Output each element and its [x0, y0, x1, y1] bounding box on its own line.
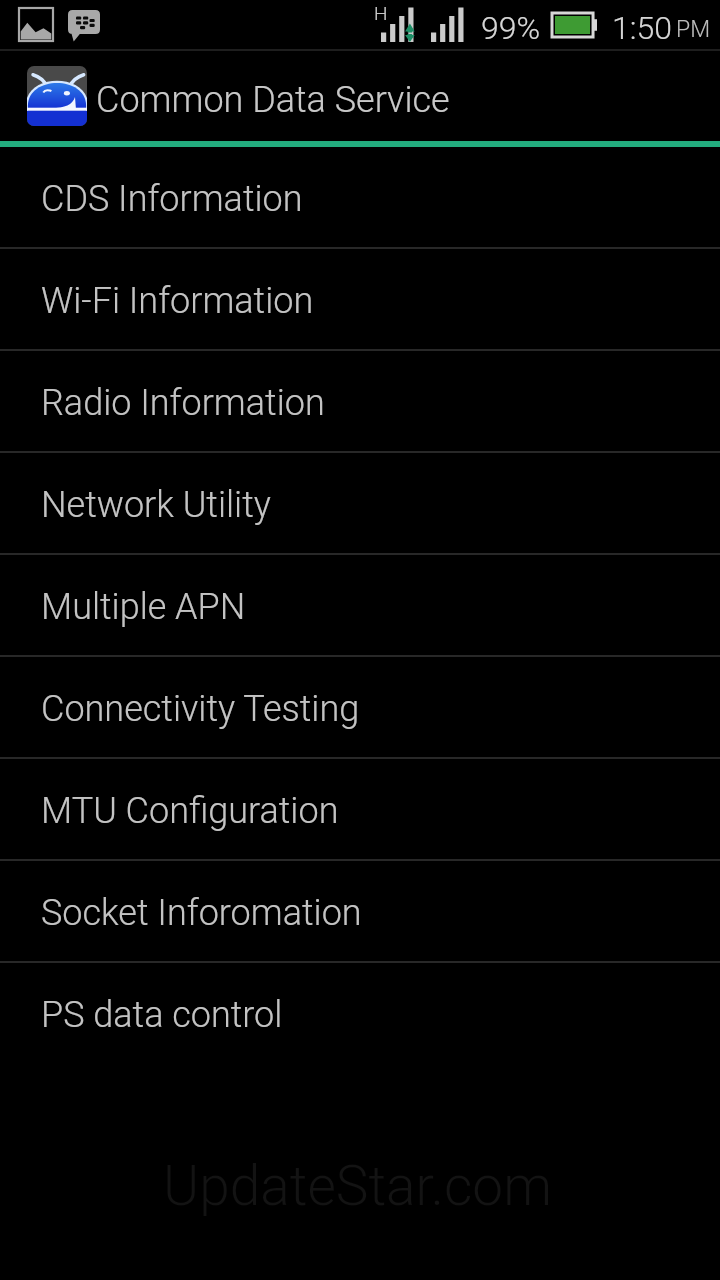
button[interactable]: Network Utility — [0, 453, 720, 553]
other: BBM messenger — [68, 10, 102, 44]
button[interactable]: Wi-Fi Information — [0, 249, 720, 349]
staticText: H — [374, 2, 388, 24]
staticText: PS data control — [41, 994, 283, 1036]
button[interactable]: CDS Information — [0, 147, 720, 247]
button[interactable]: MTU Configuration — [0, 759, 720, 859]
staticText: CDS Information — [41, 178, 303, 220]
staticText: Wi-Fi Information — [41, 280, 314, 322]
staticText: Socket Inforomation — [41, 892, 362, 934]
staticText: Common Data Service — [96, 79, 450, 121]
staticText: 99% — [481, 9, 541, 47]
button[interactable]: Radio Information — [0, 351, 720, 451]
button[interactable]: Multiple APN — [0, 555, 720, 655]
button[interactable]: Connectivity Testing — [0, 657, 720, 757]
staticText: UpdateStar.com — [163, 1154, 552, 1218]
staticText: Multiple APN — [41, 586, 246, 628]
button[interactable]: Common Data Service — [0, 51, 720, 141]
button[interactable]: Socket Inforomation — [0, 861, 720, 961]
other: Gallery — [18, 7, 55, 43]
staticText: Network Utility — [41, 484, 271, 526]
staticText: Connectivity Testing — [41, 688, 360, 730]
staticText: 1:50 — [612, 9, 672, 47]
staticText: PM — [676, 16, 711, 43]
button[interactable]: PS data control — [0, 963, 720, 1063]
staticText: MTU Configuration — [41, 790, 339, 832]
staticText: Radio Information — [41, 382, 325, 424]
